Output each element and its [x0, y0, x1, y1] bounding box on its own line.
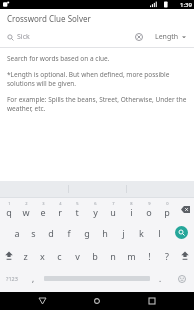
staticText: 0 — [166, 201, 169, 206]
button[interactable]: 6 — [86, 198, 104, 221]
button[interactable]: s — [25, 221, 42, 244]
button[interactable]: ! — [140, 244, 158, 267]
button[interactable]: h — [96, 221, 114, 244]
staticText: n — [110, 250, 116, 262]
staticText: Crossword Clue Solver — [7, 13, 91, 24]
staticText: s — [31, 227, 36, 239]
staticText: h — [102, 227, 108, 239]
button[interactable]: m — [122, 244, 140, 267]
button[interactable]: b — [86, 244, 104, 267]
staticText: 5 — [76, 201, 79, 206]
staticText: l — [158, 227, 161, 239]
button[interactable]: 4 — [51, 198, 68, 221]
button[interactable]: z — [17, 244, 34, 267]
button[interactable]: x — [34, 244, 51, 267]
staticText: d — [48, 227, 54, 239]
staticText: m — [127, 250, 136, 262]
button[interactable]: Period — [151, 267, 169, 290]
staticText: r — [58, 206, 62, 218]
staticText: j — [122, 227, 125, 239]
staticText: k — [139, 227, 144, 239]
button[interactable]: 5 — [68, 198, 86, 221]
staticText: p — [164, 206, 170, 218]
button[interactable]: Comma — [24, 267, 42, 290]
staticText: 7 — [112, 201, 115, 206]
button[interactable]: g — [78, 221, 96, 244]
button[interactable]: l — [150, 221, 168, 244]
staticText: u — [110, 206, 116, 218]
staticText: a — [14, 227, 20, 239]
button[interactable]: 2 — [17, 198, 34, 221]
staticText: ! — [148, 250, 151, 262]
button[interactable]: c — [51, 244, 68, 267]
staticText: ? — [165, 250, 169, 262]
staticText: q — [6, 206, 12, 218]
button[interactable]: Emoji — [169, 267, 194, 290]
staticText: Search for words based on a clue. — [7, 54, 110, 63]
staticText: v — [75, 250, 80, 262]
staticText: , — [32, 273, 35, 284]
staticText: b — [92, 250, 98, 262]
button[interactable]: a — [8, 221, 25, 244]
button[interactable]: j — [114, 221, 132, 244]
staticText: 1 — [8, 201, 11, 206]
button[interactable]: Shift — [0, 244, 17, 267]
button[interactable]: Back — [27, 292, 57, 310]
button[interactable]: Sick — [0, 27, 130, 47]
staticText: 6 — [94, 201, 97, 206]
button[interactable]: Clear search — [130, 28, 148, 46]
button[interactable]: Length — [150, 27, 191, 47]
staticText: 1:39 — [180, 1, 192, 9]
staticText: o — [146, 206, 152, 218]
staticText: w — [22, 206, 30, 218]
button[interactable]: Backspace — [176, 198, 194, 221]
staticText: g — [84, 227, 90, 239]
staticText: *Length is optional. But when defined, m… — [7, 70, 189, 88]
staticText: i — [130, 206, 133, 218]
staticText: 3 — [42, 201, 45, 206]
button[interactable]: Home — [82, 292, 112, 310]
staticText: 9 — [148, 201, 151, 206]
staticText: 4 — [59, 201, 62, 206]
button[interactable]: Recent apps — [137, 292, 167, 310]
staticText: x — [40, 250, 45, 262]
staticText: Length — [155, 32, 179, 42]
staticText: y — [93, 206, 98, 218]
staticText: ?123 — [6, 275, 18, 282]
staticText: For example: Spills the beans, Street, O… — [7, 95, 189, 113]
button[interactable]: 9 — [140, 198, 158, 221]
button[interactable]: Shift — [176, 244, 194, 267]
staticText: t — [75, 206, 79, 218]
staticText: . — [159, 273, 162, 284]
button[interactable]: 1 — [0, 198, 17, 221]
button[interactable]: Space — [42, 267, 151, 290]
button[interactable]: ? — [158, 244, 176, 267]
button[interactable]: 8 — [122, 198, 140, 221]
button[interactable]: k — [132, 221, 150, 244]
button[interactable]: Search — [168, 221, 194, 244]
button[interactable]: v — [68, 244, 86, 267]
button[interactable]: ?123 — [0, 267, 24, 290]
staticText: c — [57, 250, 62, 262]
button[interactable]: 7 — [104, 198, 122, 221]
button[interactable]: f — [60, 221, 78, 244]
staticText: Sick — [17, 32, 30, 42]
button[interactable]: d — [42, 221, 60, 244]
staticText: 8 — [130, 201, 133, 206]
staticText: 2 — [25, 201, 28, 206]
staticText: e — [40, 206, 46, 218]
button[interactable]: 3 — [34, 198, 51, 221]
button[interactable]: n — [104, 244, 122, 267]
button[interactable]: 0 — [158, 198, 176, 221]
staticText: z — [23, 250, 28, 262]
staticText: f — [67, 227, 71, 239]
